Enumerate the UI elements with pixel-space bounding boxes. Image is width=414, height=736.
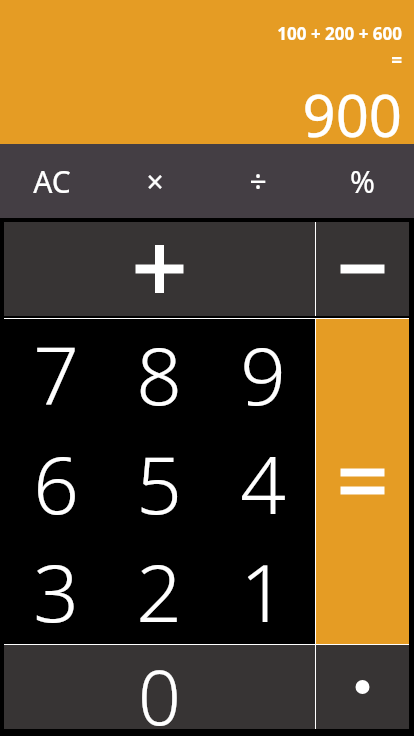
staticText: 5 xyxy=(136,428,182,536)
button[interactable]: 2 xyxy=(107,536,211,644)
button[interactable]: 5 xyxy=(107,428,211,536)
button[interactable]: Equals xyxy=(316,319,409,644)
button[interactable]: 9 xyxy=(211,319,315,428)
button[interactable]: × xyxy=(103,144,206,218)
staticText: 8 xyxy=(136,319,182,428)
staticText: 2 xyxy=(136,536,182,644)
staticText: 3 xyxy=(33,536,79,644)
button[interactable]: 3 xyxy=(4,536,107,644)
button[interactable]: Plus xyxy=(4,222,315,316)
button[interactable]: % xyxy=(310,144,414,218)
button[interactable]: Minus xyxy=(316,222,409,316)
button[interactable]: ÷ xyxy=(206,144,310,218)
button[interactable]: 1 xyxy=(211,536,315,644)
staticText: 4 xyxy=(240,428,286,536)
button[interactable]: 0 xyxy=(4,645,315,729)
staticText: 6 xyxy=(33,428,79,536)
button[interactable]: AC xyxy=(0,144,103,218)
staticText: 100 + 200 + 600 xyxy=(277,22,402,45)
staticText: 9 xyxy=(240,319,286,428)
staticText: 1 xyxy=(240,536,286,644)
staticText: AC xyxy=(33,161,71,202)
button[interactable]: Decimal point xyxy=(316,645,409,729)
button[interactable]: 6 xyxy=(4,428,107,536)
staticText: ÷ xyxy=(249,161,267,202)
staticText: 7 xyxy=(33,319,79,428)
staticText: 900 xyxy=(302,75,402,144)
button[interactable]: 8 xyxy=(107,319,211,428)
button[interactable]: 7 xyxy=(4,319,107,428)
staticText: 0 xyxy=(138,645,181,729)
staticText: × xyxy=(146,161,164,202)
button[interactable]: 4 xyxy=(211,428,315,536)
staticText: = xyxy=(391,47,402,73)
staticText: % xyxy=(350,161,375,202)
